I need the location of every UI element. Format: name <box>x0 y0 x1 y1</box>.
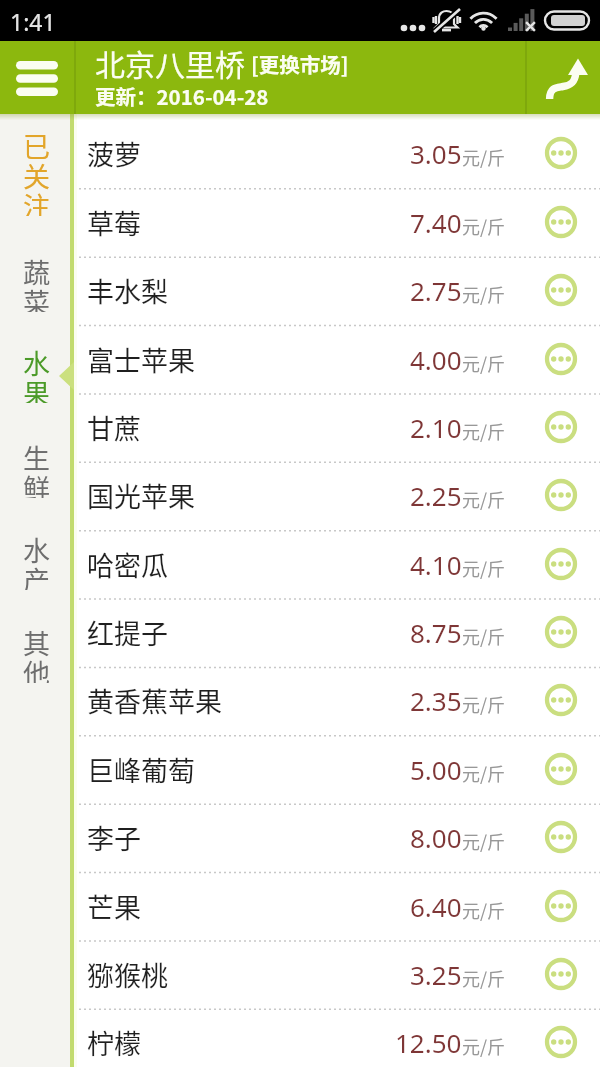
button[interactable]: More options <box>544 683 578 717</box>
staticText: 芒果 <box>87 887 410 926</box>
staticText: 元/斤 <box>462 897 506 923</box>
staticText: 甘蔗 <box>87 408 410 447</box>
staticText: 8.00 <box>410 820 462 855</box>
button[interactable]: 李子 <box>77 804 600 872</box>
staticText: 8.75 <box>410 615 462 650</box>
staticText: 红提子 <box>87 613 410 652</box>
staticText: 其 他 <box>23 623 50 683</box>
staticText: 4.00 <box>410 342 462 377</box>
staticText: 元/斤 <box>462 350 506 376</box>
button[interactable]: 哈密瓜 <box>77 531 600 599</box>
staticText: 元/斤 <box>462 623 506 649</box>
staticText: 元/斤 <box>462 418 506 444</box>
button[interactable]: More options <box>544 136 578 170</box>
staticText: 水 产 <box>23 530 50 590</box>
staticText: 元/斤 <box>462 1033 506 1059</box>
staticText: 3.05 <box>410 136 462 171</box>
staticText: 元/斤 <box>462 213 506 239</box>
staticText: 7.40 <box>410 205 462 240</box>
button[interactable]: More options <box>544 478 578 512</box>
button[interactable]: More options <box>544 342 578 376</box>
staticText: 元/斤 <box>462 281 506 307</box>
button[interactable]: More options <box>544 410 578 444</box>
staticText: 生 鲜 <box>23 438 50 498</box>
button[interactable]: More options <box>544 752 578 786</box>
button[interactable]: 生 鲜 <box>0 438 77 498</box>
button[interactable]: 水 果 <box>0 343 77 403</box>
staticText: 黄香蕉苹果 <box>87 681 410 720</box>
button[interactable]: More options <box>544 957 578 991</box>
staticText: 猕猴桃 <box>87 955 410 994</box>
button[interactable]: More options <box>544 205 578 239</box>
button[interactable]: 菠萝 <box>77 120 600 188</box>
button[interactable]: 芒果 <box>77 873 600 941</box>
button[interactable]: 柠檬 <box>77 1009 600 1067</box>
button[interactable]: More options <box>544 615 578 649</box>
staticText: 元/斤 <box>462 691 506 717</box>
button[interactable]: 蔬 菜 <box>0 252 77 312</box>
button[interactable]: 其 他 <box>0 623 77 683</box>
staticText: 2.35 <box>410 683 462 718</box>
button[interactable]: More options <box>544 547 578 581</box>
staticText: 巨峰葡萄 <box>87 750 410 789</box>
button[interactable]: More options <box>544 273 578 307</box>
button[interactable]: More options <box>544 1025 578 1059</box>
staticText: 元/斤 <box>462 760 506 786</box>
staticText: 2.75 <box>410 273 462 308</box>
staticText: 3.25 <box>410 957 462 992</box>
button[interactable]: Menu <box>0 41 74 114</box>
staticText: 4.10 <box>410 547 462 582</box>
staticText: 12.50 <box>395 1025 462 1060</box>
button[interactable]: 国光苹果 <box>77 462 600 530</box>
staticText: 元/斤 <box>462 486 506 512</box>
staticText: 水 果 <box>23 343 50 403</box>
staticText: 富士苹果 <box>87 340 410 379</box>
button[interactable]: 丰水梨 <box>77 257 600 325</box>
staticText: 元/斤 <box>462 828 506 854</box>
staticText: 元/斤 <box>462 965 506 991</box>
staticText: 草莓 <box>87 203 410 242</box>
staticText: 元/斤 <box>462 555 506 581</box>
button[interactable]: 黄香蕉苹果 <box>77 667 600 735</box>
button[interactable]: 富士苹果 <box>77 326 600 394</box>
button[interactable]: 已 关 注 <box>0 126 77 216</box>
button[interactable]: 甘蔗 <box>77 394 600 462</box>
button[interactable]: More options <box>544 889 578 923</box>
button[interactable]: Share <box>527 41 600 114</box>
staticText: 5.00 <box>410 752 462 787</box>
staticText: 北京八里桥 <box>95 41 245 84</box>
button[interactable]: 巨峰葡萄 <box>77 736 600 804</box>
button[interactable]: 草莓 <box>77 189 600 257</box>
staticText: 6.40 <box>410 889 462 924</box>
staticText: 已 关 注 <box>23 126 50 216</box>
button[interactable]: 水 产 <box>0 530 77 590</box>
staticText: 国光苹果 <box>87 476 410 515</box>
staticText: 柠檬 <box>87 1023 395 1062</box>
button[interactable]: More options <box>544 820 578 854</box>
staticText: 更新：2016-04-28 <box>95 81 269 111</box>
staticText: 菠萝 <box>87 134 410 173</box>
staticText: 丰水梨 <box>87 271 410 310</box>
staticText: [更换市场] <box>251 49 349 79</box>
staticText: 2.25 <box>410 478 462 513</box>
staticText: 哈密瓜 <box>87 545 410 584</box>
staticText: 元/斤 <box>462 144 506 170</box>
staticText: 李子 <box>87 818 410 857</box>
staticText: 2.10 <box>410 410 462 445</box>
button[interactable]: 猕猴桃 <box>77 941 600 1009</box>
button[interactable]: 红提子 <box>77 599 600 667</box>
staticText: 蔬 菜 <box>23 252 50 312</box>
staticText: 1:41 <box>10 6 56 37</box>
